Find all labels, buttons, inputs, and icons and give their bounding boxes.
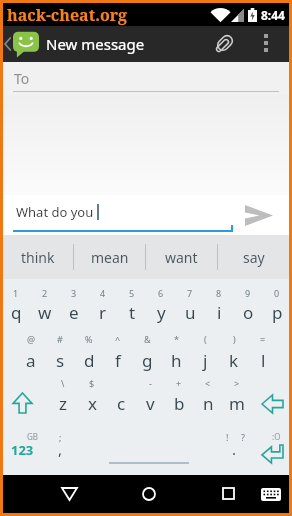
staticText: u <box>185 301 196 324</box>
staticText: i <box>217 301 222 324</box>
staticText: j <box>203 349 208 372</box>
button[interactable] <box>262 445 283 463</box>
button[interactable] <box>261 488 281 501</box>
staticText: 3 <box>71 287 77 299</box>
staticText: b <box>174 392 185 415</box>
staticText: ; <box>59 431 62 443</box>
staticText: $ <box>89 377 95 389</box>
staticText: s <box>56 349 65 372</box>
staticText: To <box>14 69 30 88</box>
staticText: d <box>84 349 95 372</box>
staticText: w <box>38 301 52 324</box>
button[interactable] <box>264 34 268 54</box>
staticText: 8 <box>216 287 222 299</box>
staticText: @ <box>27 333 36 345</box>
staticText: a <box>26 349 36 372</box>
button[interactable]: think <box>3 235 73 279</box>
staticText: < <box>205 377 211 389</box>
staticText: z <box>59 392 67 415</box>
staticText: :O <box>272 431 281 442</box>
staticText: h <box>171 349 182 372</box>
button[interactable] <box>245 205 273 226</box>
staticText: say <box>243 248 265 267</box>
staticText: & <box>144 333 151 345</box>
staticText: * <box>174 333 179 345</box>
staticText: g <box>142 349 153 372</box>
button[interactable]: want <box>146 235 217 279</box>
staticText: + <box>176 377 182 389</box>
staticText: What do you <box>16 203 94 221</box>
staticText: mean <box>91 248 129 267</box>
staticText: . <box>232 439 237 459</box>
staticText: 8:44 <box>261 7 285 23</box>
staticText: o <box>243 301 254 324</box>
staticText: 2 <box>42 287 48 299</box>
button[interactable]: say <box>218 235 289 279</box>
staticText: > <box>234 377 240 389</box>
staticText: # <box>57 333 63 345</box>
staticText: 1 <box>13 287 19 299</box>
staticText: GB <box>27 431 39 442</box>
staticText: 9 <box>245 287 251 299</box>
staticText: m <box>229 392 245 415</box>
staticText: - <box>149 377 152 389</box>
button[interactable]: mean <box>74 235 145 279</box>
staticText: f <box>115 349 121 372</box>
staticText: ^ <box>115 333 121 345</box>
staticText: = <box>260 333 266 345</box>
staticText: c <box>117 392 126 415</box>
staticText: ) <box>233 333 236 345</box>
button[interactable] <box>62 488 77 500</box>
staticText: want <box>165 248 198 267</box>
staticText: e <box>69 301 79 324</box>
staticText: p <box>272 301 283 324</box>
button[interactable] <box>212 32 236 56</box>
staticText: \ <box>61 377 65 389</box>
staticText: q <box>11 301 22 324</box>
staticText: think <box>21 248 55 267</box>
staticText: l <box>261 349 266 372</box>
staticText: r <box>99 301 107 324</box>
staticText: 0 <box>274 287 280 299</box>
staticText: New message <box>46 34 145 54</box>
button[interactable] <box>262 395 283 413</box>
staticText: 7 <box>187 287 193 299</box>
button[interactable] <box>13 393 32 413</box>
staticText: ? <box>241 431 245 443</box>
staticText: ( <box>204 333 207 345</box>
staticText: n <box>203 392 214 415</box>
staticText: ! <box>226 431 229 443</box>
staticText: 4 <box>100 287 106 299</box>
staticText: , <box>58 439 63 459</box>
staticText: % <box>85 333 93 345</box>
button[interactable] <box>222 487 235 500</box>
staticText: k <box>229 349 239 372</box>
staticText: 6 <box>158 287 164 299</box>
staticText: hack-cheat.org <box>7 4 128 26</box>
staticText: x <box>88 392 97 415</box>
button[interactable]: 123 <box>11 441 34 459</box>
button[interactable]: New message <box>3 26 289 62</box>
staticText: v <box>146 392 155 415</box>
staticText: y <box>157 301 166 324</box>
button[interactable]: To <box>3 62 289 95</box>
staticText: t <box>129 301 136 324</box>
button[interactable] <box>142 487 156 501</box>
staticText: 5 <box>129 287 135 299</box>
